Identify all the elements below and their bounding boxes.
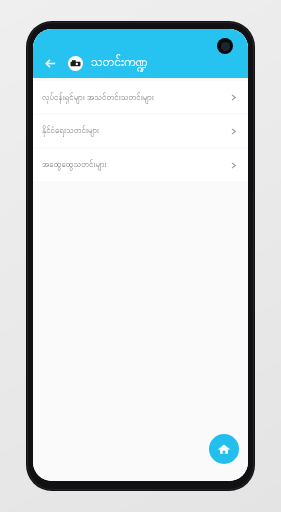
staticText: လုပ်ငန်းရှင်များ အသင်တင်းသတင်းများ xyxy=(42,91,228,103)
staticText: အထွေထွေသတင်းများ xyxy=(42,159,228,171)
staticText: နိုင်ငံရေးသတင်းများ xyxy=(42,125,228,137)
button[interactable]: Home xyxy=(209,434,239,464)
button[interactable]: Back xyxy=(39,52,61,74)
staticText: သတင်းကဏ္ဍ xyxy=(91,54,148,72)
button[interactable]: အထွေထွေသတင်းများ xyxy=(33,149,248,181)
button[interactable]: လုပ်ငန်းရှင်များ အသင်တင်းသတင်းများ xyxy=(33,81,248,113)
button[interactable]: နိုင်ငံရေးသတင်းများ xyxy=(33,115,248,147)
